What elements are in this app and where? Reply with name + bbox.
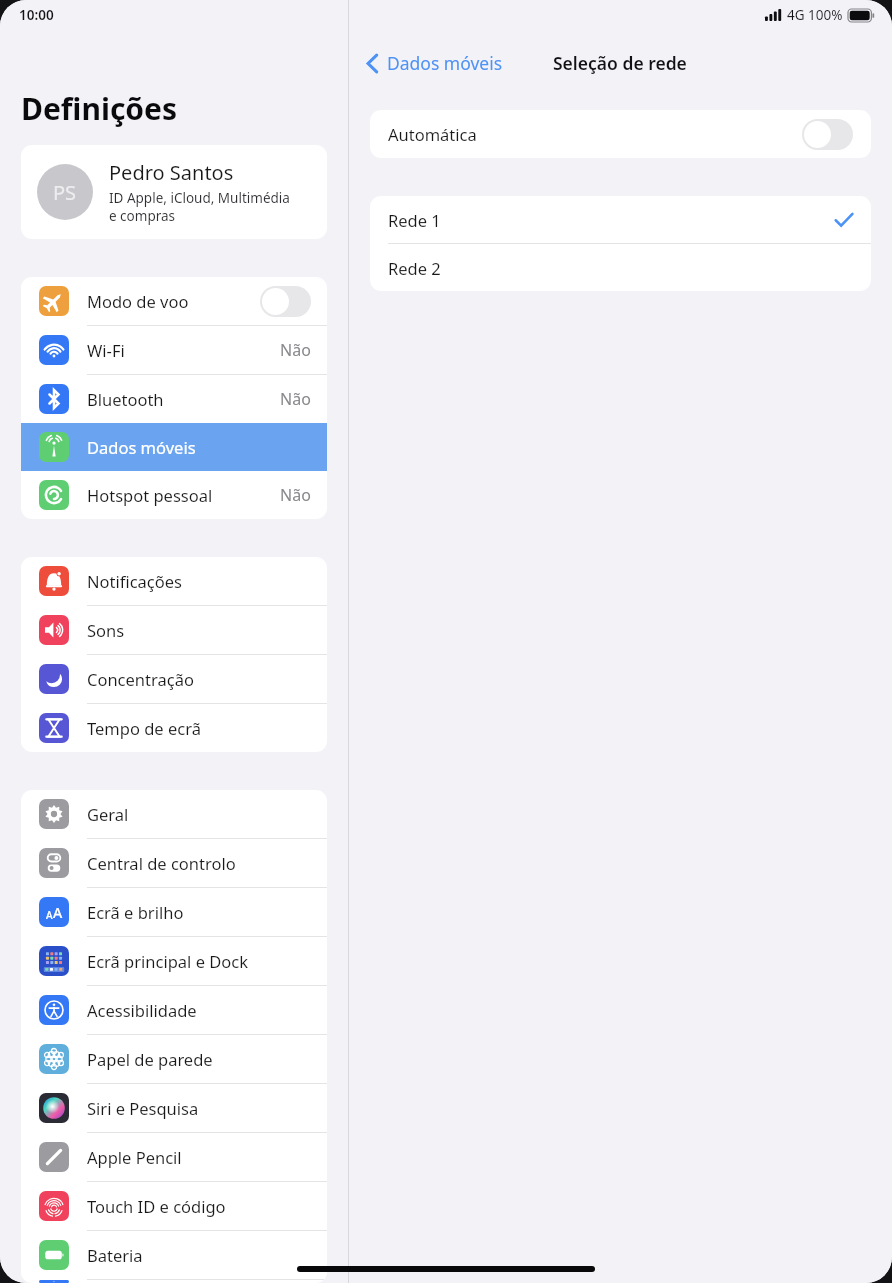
button[interactable]: Hotspot pessoal [21,471,327,519]
staticText: e compras [109,207,176,225]
button[interactable]: Geral [21,790,327,838]
staticText: Definições [21,88,178,129]
staticText: Bluetooth [87,388,280,410]
staticText: Dados móveis [87,436,311,458]
staticText: A [46,908,53,922]
staticText: Concentração [87,668,311,690]
button[interactable]: Automática [370,110,871,158]
staticText: Notificações [87,570,311,592]
button[interactable]: Central de controlo [21,839,327,887]
staticText: Modo de voo [87,290,260,312]
staticText: Wi-Fi [87,339,280,361]
button[interactable]: Touch ID e código [21,1182,327,1230]
staticText: Siri e Pesquisa [87,1097,311,1119]
button[interactable]: Modo de voo [21,277,327,325]
staticText: Ecrã principal e Dock [87,950,311,972]
staticText: 10:00 [19,6,54,24]
staticText: Sons [87,619,311,641]
button[interactable]: Papel de parede [21,1035,327,1083]
staticText: Touch ID e código [87,1195,311,1217]
staticText: Ecrã e brilho [87,901,311,923]
button[interactable]: Sons [21,606,327,654]
staticText: Bateria [87,1244,311,1266]
button[interactable]: Dados móveis [21,423,327,471]
staticText: Pedro Santos [109,159,234,186]
button[interactable]: Apple Pencil [21,1133,327,1181]
button[interactable]: A [21,888,327,936]
staticText: Acessibilidade [87,999,311,1021]
button[interactable]: Tempo de ecrã [21,704,327,752]
button[interactable]: Bluetooth [21,375,327,423]
button[interactable]: Rede 2 [370,244,871,291]
staticText: ID Apple, iCloud, Multimédia [109,189,290,207]
staticText: Papel de parede [87,1048,311,1070]
staticText: Dados móveis [387,51,503,75]
staticText: Geral [87,803,311,825]
staticText: Não [280,484,311,506]
button[interactable]: Rede 1 [370,196,871,243]
staticText: Não [280,388,311,410]
button[interactable]: Siri e Pesquisa [21,1084,327,1132]
button[interactable]: Dados móveis [361,47,509,79]
other: Selecionada [835,213,853,227]
button[interactable]: PS [21,145,327,239]
button[interactable]: Bateria [21,1231,327,1279]
staticText: Tempo de ecrã [87,717,311,739]
staticText: Seleção de rede [553,51,687,75]
staticText: A [53,903,63,922]
staticText: Hotspot pessoal [87,484,280,506]
staticText: Apple Pencil [87,1146,311,1168]
staticText: Central de controlo [87,852,311,874]
staticText: Rede 2 [388,257,441,279]
button[interactable]: Notificações [21,557,327,605]
staticText: Não [280,339,311,361]
staticText: PS [53,179,77,206]
staticText: Rede 1 [388,209,835,231]
button[interactable]: Wi-Fi [21,326,327,374]
staticText: 4G 100% [787,6,843,24]
staticText: Automática [388,123,802,145]
button[interactable]: Privacidade [21,1280,327,1283]
button[interactable]: Ecrã principal e Dock [21,937,327,985]
button[interactable]: Concentração [21,655,327,703]
button[interactable]: Acessibilidade [21,986,327,1034]
